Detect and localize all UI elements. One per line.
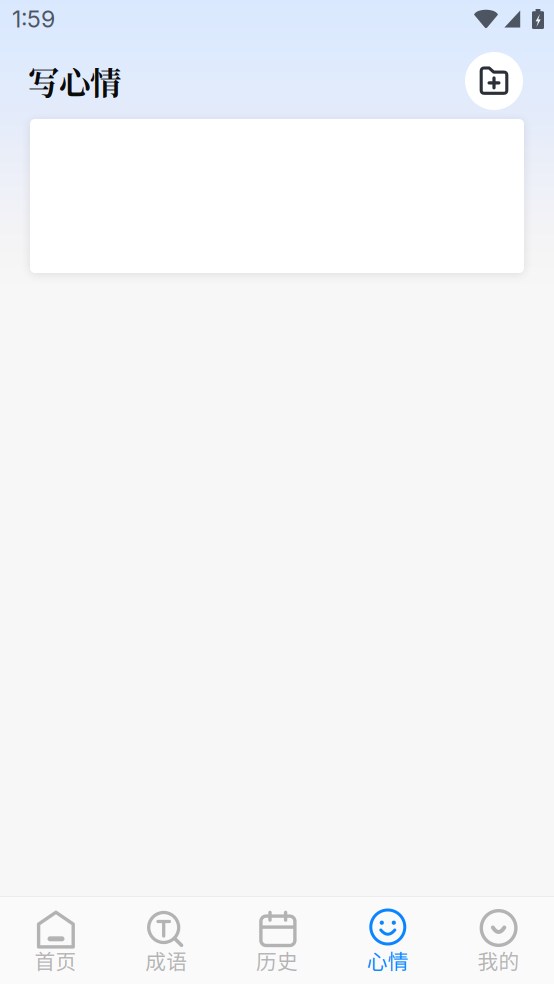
staticText: 成语 bbox=[145, 945, 187, 975]
staticText: 首页 bbox=[34, 945, 76, 975]
staticText: 1:59 bbox=[12, 5, 55, 33]
button[interactable]: 首页 bbox=[0, 896, 111, 984]
button[interactable]: Write your mood bbox=[0, 119, 554, 273]
button[interactable]: New entry bbox=[465, 52, 523, 110]
button[interactable]: 我的 bbox=[443, 896, 554, 984]
staticText: 历史 bbox=[256, 945, 298, 975]
button[interactable]: 心情 bbox=[332, 896, 443, 984]
staticText: 我的 bbox=[478, 945, 520, 975]
staticText: 写心情 bbox=[28, 58, 121, 104]
staticText: 心情 bbox=[367, 945, 409, 975]
button[interactable]: 历史 bbox=[222, 896, 332, 984]
button[interactable]: 成语 bbox=[111, 896, 222, 984]
